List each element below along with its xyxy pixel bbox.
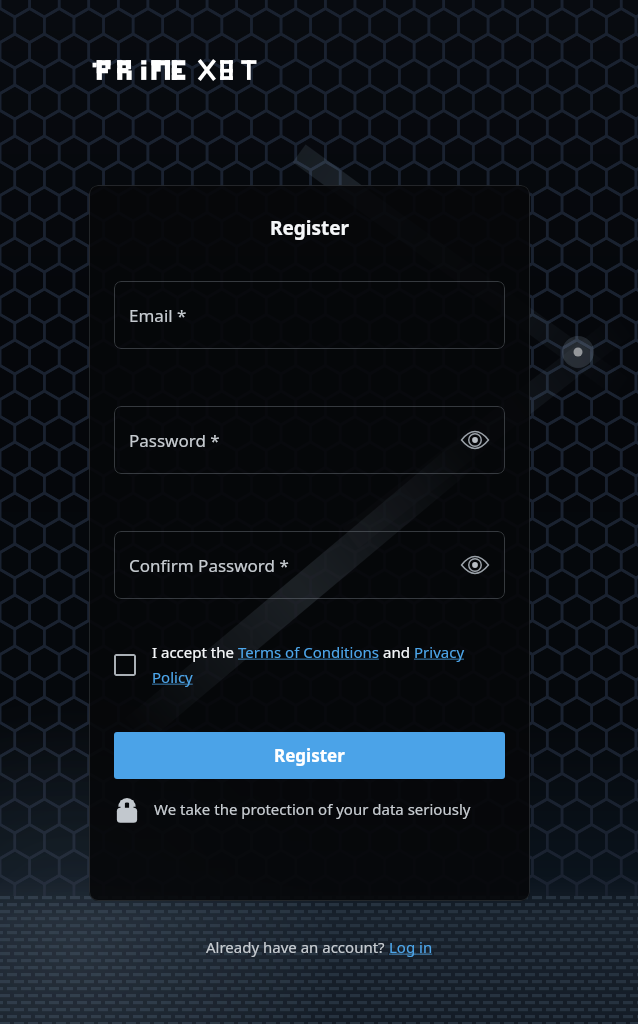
staticText: and — [383, 642, 414, 662]
staticText: Log in — [389, 937, 433, 957]
other: PrimeXBT logo — [92, 56, 262, 82]
button[interactable]: Email * — [114, 281, 505, 349]
staticText: Privacy — [414, 642, 465, 662]
staticText: Email * — [129, 304, 187, 327]
button[interactable]: Terms of Conditions — [238, 642, 383, 662]
staticText: Confirm Password * — [129, 554, 289, 577]
button[interactable]: Log in — [389, 937, 433, 957]
button[interactable]: Accept terms checkbox — [114, 654, 136, 676]
button[interactable]: Show password — [459, 424, 491, 456]
staticText: We take the protection of your data seri… — [154, 799, 471, 819]
button[interactable]: Register — [114, 732, 505, 779]
staticText: Register — [274, 744, 345, 767]
button[interactable]: Password * — [114, 406, 505, 474]
staticText: Terms of Conditions — [238, 642, 383, 662]
staticText: Already have an account? — [206, 937, 389, 957]
staticText: I accept the — [152, 642, 238, 662]
staticText: Register — [270, 215, 350, 241]
button[interactable]: Confirm Password * — [114, 531, 505, 599]
staticText: Password * — [129, 429, 220, 452]
staticText: Policy — [152, 667, 193, 687]
button[interactable]: Privacy — [414, 642, 465, 662]
button[interactable]: Policy — [152, 667, 193, 687]
button[interactable]: Show password — [459, 549, 491, 581]
